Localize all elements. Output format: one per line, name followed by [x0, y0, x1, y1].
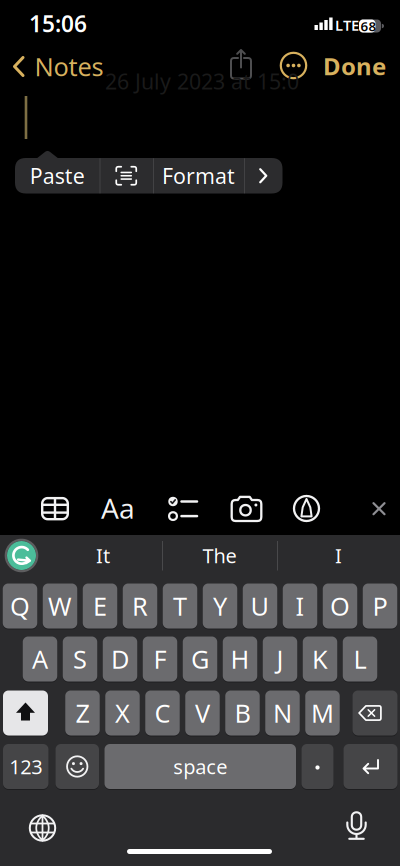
button[interactable]: More: [278, 50, 308, 80]
button[interactable]: 123: [3, 743, 48, 789]
staticText: Done: [323, 50, 386, 82]
button[interactable]: Grammarly: [3, 537, 39, 573]
button[interactable]: Format: [154, 158, 242, 193]
staticText: 15:06: [29, 8, 87, 38]
staticText: Aa: [101, 489, 135, 527]
button[interactable]: Checklist: [160, 487, 204, 531]
staticText: R: [132, 589, 148, 623]
button[interactable]: L: [343, 636, 377, 682]
staticText: J: [276, 642, 283, 676]
staticText: space: [173, 753, 227, 780]
staticText: C: [154, 696, 170, 730]
button[interactable]: Markup: [284, 486, 328, 530]
button[interactable]: N: [265, 690, 300, 736]
staticText: Format: [162, 162, 235, 190]
button[interactable]: J: [263, 636, 297, 682]
button[interactable]: P: [363, 583, 397, 629]
staticText: M: [311, 696, 334, 730]
button[interactable]: G: [183, 636, 217, 682]
button[interactable]: Y: [203, 583, 237, 629]
button[interactable]: X: [105, 690, 140, 736]
button[interactable]: A: [23, 636, 57, 682]
button[interactable]: Shift: [3, 690, 48, 736]
button[interactable]: V: [185, 690, 220, 736]
button[interactable]: W: [43, 583, 77, 629]
button[interactable]: Next keyboard: [20, 806, 64, 850]
button[interactable]: Insert table: [33, 487, 77, 531]
button[interactable]: Share: [228, 48, 254, 81]
button[interactable]: Format text: [96, 486, 140, 530]
staticText: U: [250, 589, 269, 623]
staticText: 26 July 2023 at 15:0: [105, 67, 299, 95]
button[interactable]: B: [225, 690, 260, 736]
staticText: O: [330, 589, 350, 623]
staticText: Z: [75, 696, 89, 730]
staticText: 68: [360, 17, 376, 35]
button[interactable]: Back: [12, 53, 103, 80]
button[interactable]: U: [243, 583, 277, 629]
button[interactable]: M: [305, 690, 340, 736]
staticText: Y: [213, 589, 227, 623]
staticText: N: [273, 696, 292, 730]
staticText: Q: [10, 589, 30, 623]
staticText: G: [191, 642, 209, 676]
staticText: F: [153, 642, 166, 676]
button[interactable]: Period: [301, 743, 333, 789]
button[interactable]: T: [163, 583, 197, 629]
button[interactable]: The: [165, 535, 273, 576]
staticText: 123: [9, 753, 42, 780]
button[interactable]: O: [323, 583, 357, 629]
button[interactable]: F: [143, 636, 177, 682]
staticText: I: [335, 542, 342, 569]
button[interactable]: Emoji: [55, 743, 99, 789]
button[interactable]: D: [103, 636, 137, 682]
button[interactable]: I: [280, 535, 396, 576]
button[interactable]: Done: [323, 50, 386, 82]
staticText: P: [372, 589, 387, 623]
staticText: X: [115, 696, 130, 730]
button[interactable]: Paste: [17, 158, 97, 193]
staticText: K: [312, 642, 328, 676]
button[interactable]: I: [283, 583, 317, 629]
staticText: B: [234, 696, 250, 730]
button[interactable]: Dictate: [334, 804, 378, 848]
staticText: Notes: [34, 50, 103, 83]
staticText: LTE: [335, 15, 359, 35]
button[interactable]: It: [47, 535, 159, 576]
button[interactable]: Z: [65, 690, 100, 736]
button[interactable]: Insert photo: [224, 487, 268, 531]
staticText: H: [230, 642, 249, 676]
button[interactable]: Scan Text: [101, 158, 151, 193]
button[interactable]: S: [63, 636, 97, 682]
button[interactable]: Dismiss: [359, 487, 399, 531]
staticText: A: [32, 642, 48, 676]
staticText: I: [295, 589, 304, 623]
staticText: T: [173, 589, 187, 623]
button[interactable]: R: [123, 583, 157, 629]
button[interactable]: E: [83, 583, 117, 629]
staticText: E: [93, 589, 107, 623]
staticText: D: [111, 642, 129, 676]
staticText: L: [353, 642, 366, 676]
button[interactable]: More menu items: [245, 158, 281, 193]
staticText: Paste: [30, 162, 85, 190]
staticText: W: [48, 589, 72, 623]
button[interactable]: Delete: [352, 690, 397, 736]
button[interactable]: Return: [343, 743, 397, 789]
button[interactable]: H: [223, 636, 257, 682]
staticText: It: [96, 542, 110, 569]
button[interactable]: C: [145, 690, 180, 736]
staticText: V: [195, 696, 210, 730]
button[interactable]: space: [104, 743, 296, 789]
button[interactable]: K: [303, 636, 337, 682]
button[interactable]: Q: [3, 583, 37, 629]
staticText: The: [202, 542, 236, 569]
staticText: S: [73, 642, 87, 676]
